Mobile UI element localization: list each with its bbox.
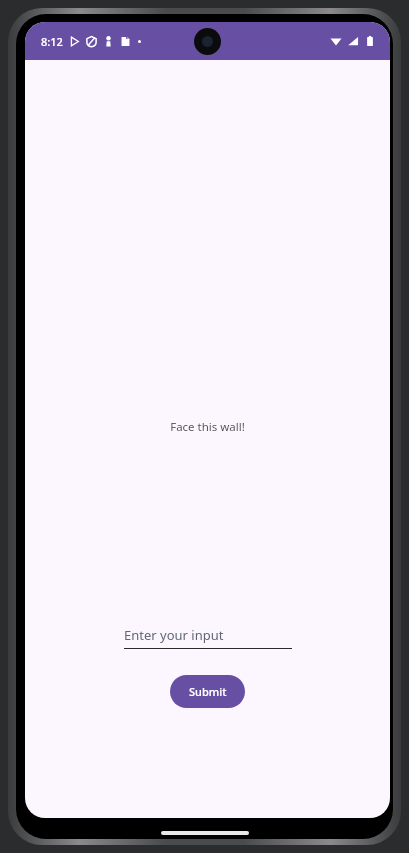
button[interactable]: Enter your input	[124, 626, 292, 649]
button[interactable]: Submit	[170, 675, 245, 708]
staticText: Face this wall!	[170, 419, 245, 435]
staticText: Submit	[189, 684, 227, 699]
staticText: Enter your input	[124, 626, 224, 644]
staticText: 8:12	[41, 34, 63, 49]
